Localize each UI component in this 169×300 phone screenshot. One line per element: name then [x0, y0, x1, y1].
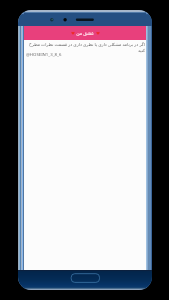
staticText: اگر در برنامه مشکلی داری یا نظری داری در…: [25, 41, 145, 53]
staticText: @HOSEIN1_3_8_6: [26, 51, 62, 57]
button[interactable]: عشق من: [24, 26, 146, 40]
staticText: عشق من: [75, 30, 96, 36]
